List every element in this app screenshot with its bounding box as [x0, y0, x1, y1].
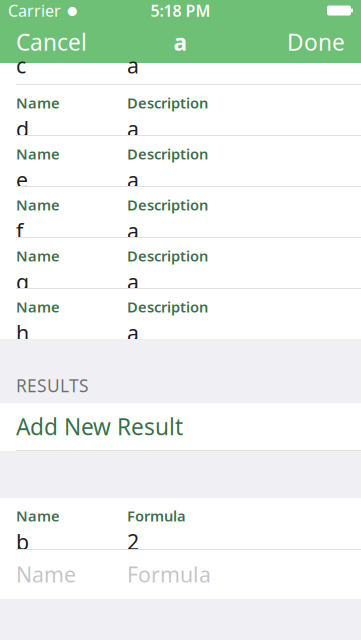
button[interactable]: Name	[0, 85, 361, 135]
staticText: Name	[16, 297, 60, 316]
staticText: Name	[16, 195, 60, 214]
staticText: a	[127, 318, 139, 347]
staticText: e	[16, 165, 28, 194]
staticText: Done	[287, 27, 345, 57]
staticText: Description	[127, 297, 208, 316]
staticText: Add New Result	[16, 411, 183, 441]
staticText: g	[16, 267, 29, 296]
staticText: Carrier	[8, 0, 61, 21]
button[interactable]: Cancel	[6, 21, 97, 63]
button[interactable]: Name	[0, 238, 361, 288]
staticText: Name	[16, 93, 60, 112]
staticText: f	[16, 216, 23, 245]
button[interactable]: Done	[277, 21, 355, 63]
staticText: d	[16, 114, 29, 143]
staticText: Name	[16, 246, 60, 265]
staticText: h	[16, 318, 29, 347]
button[interactable]: Name	[0, 498, 361, 549]
staticText: Cancel	[16, 27, 87, 57]
staticText: Description	[127, 93, 208, 112]
staticText: Description	[127, 195, 208, 214]
staticText: 2	[127, 527, 139, 556]
staticText: b	[16, 527, 29, 556]
staticText: a	[127, 165, 139, 194]
staticText: RESULTS	[16, 374, 89, 397]
staticText: a	[173, 27, 187, 57]
staticText: a	[127, 216, 139, 245]
staticText: c	[16, 51, 26, 79]
button[interactable]: Name	[0, 550, 361, 599]
staticText: Name	[16, 560, 76, 588]
button[interactable]: Name	[0, 187, 361, 237]
staticText: Name	[16, 144, 60, 163]
button[interactable]: Add New Result	[0, 403, 361, 450]
staticText: Formula	[127, 506, 186, 525]
staticText: Formula	[127, 560, 211, 588]
button[interactable]: Name	[0, 136, 361, 186]
button[interactable]: c	[0, 63, 361, 84]
button[interactable]: Name	[0, 289, 361, 339]
staticText: Description	[127, 144, 208, 163]
staticText: a	[127, 114, 139, 143]
staticText: Description	[127, 246, 208, 265]
staticText: Name	[16, 506, 60, 525]
staticText: ●	[67, 4, 77, 17]
staticText: a	[127, 51, 139, 79]
staticText: 5:18 PM	[150, 0, 210, 21]
staticText: a	[127, 267, 139, 296]
